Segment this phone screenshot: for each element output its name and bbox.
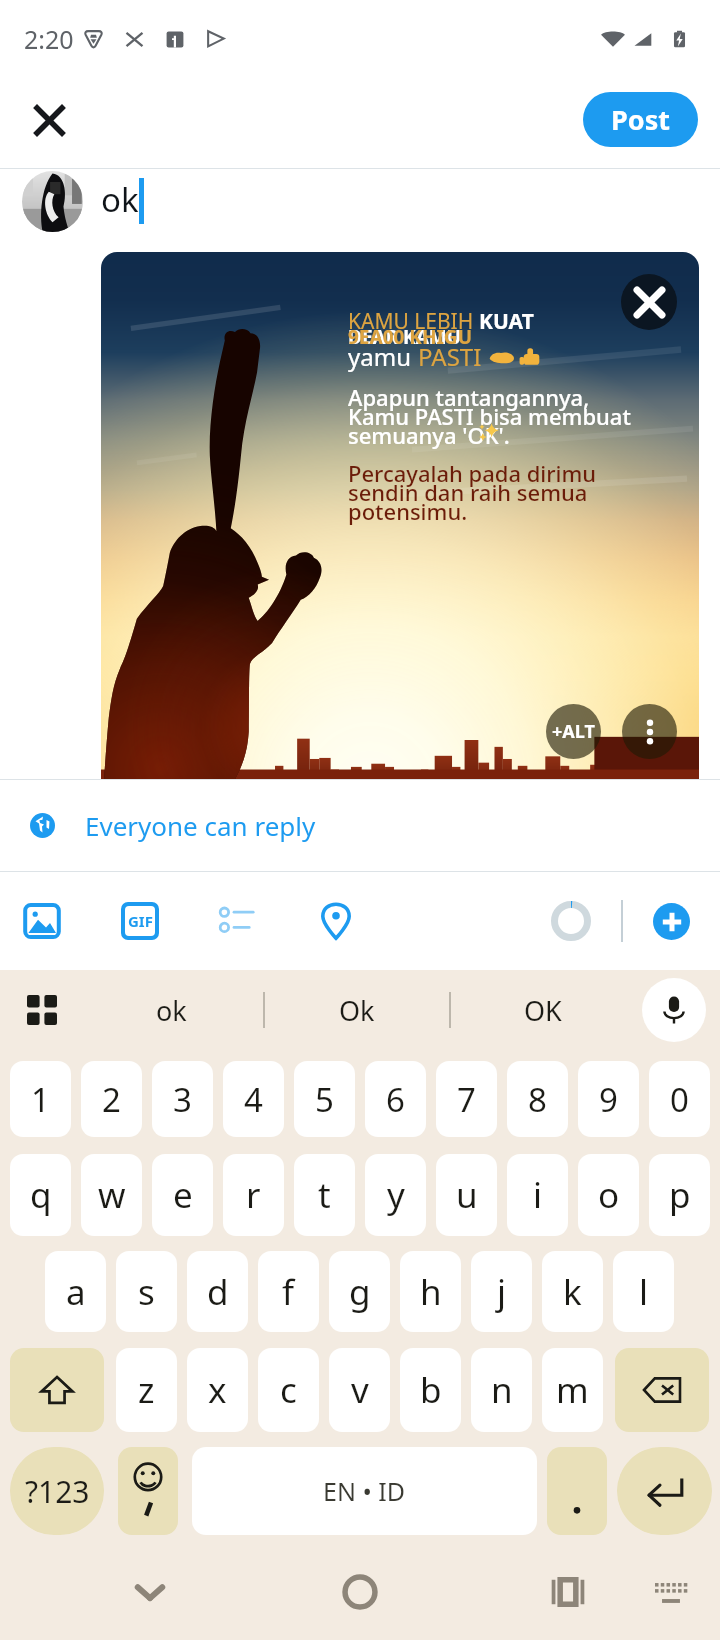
button[interactable]: 2 [81, 1061, 142, 1137]
staticText: 2 [102, 1077, 121, 1122]
button[interactable]: w [81, 1154, 142, 1236]
button[interactable]: Emoji [118, 1447, 178, 1535]
button[interactable]: y [365, 1154, 426, 1236]
button[interactable]: r [223, 1154, 284, 1236]
button[interactable]: Shift [10, 1348, 104, 1432]
button[interactable]: Backspace [615, 1348, 709, 1432]
staticText: b [420, 1366, 442, 1414]
button[interactable]: Hide keyboard [120, 1562, 180, 1622]
button[interactable]: i [507, 1154, 568, 1236]
button[interactable]: a [45, 1251, 106, 1332]
button[interactable]: 9 [578, 1061, 639, 1137]
button[interactable]: Close [14, 85, 84, 155]
button[interactable]: q [10, 1154, 71, 1236]
staticText: 1 [31, 1077, 50, 1122]
button[interactable]: ok [80, 970, 263, 1050]
button[interactable]: Voice input [642, 978, 706, 1042]
staticText: Ok [339, 992, 375, 1029]
button[interactable]: k [542, 1251, 603, 1332]
button[interactable]: f [258, 1251, 319, 1332]
button[interactable]: Keyboard menu [16, 984, 68, 1036]
staticText: 3 [173, 1077, 192, 1122]
staticText: yamu [348, 340, 418, 373]
staticText: 9EA00 KHIGU [348, 324, 472, 350]
staticText: l [639, 1268, 649, 1316]
button[interactable]: 4 [223, 1061, 284, 1137]
staticText: z [138, 1366, 155, 1414]
button[interactable]: h [400, 1251, 461, 1332]
button[interactable]: Profile picture [22, 171, 83, 232]
staticText: p [669, 1171, 691, 1219]
button[interactable]: d [187, 1251, 248, 1332]
staticText: ?123 [25, 1471, 90, 1512]
staticText: 8 [528, 1077, 547, 1122]
button[interactable]: u [436, 1154, 497, 1236]
button[interactable]: c [258, 1348, 319, 1432]
button[interactable]: Enter [617, 1447, 712, 1535]
button[interactable]: 0 [649, 1061, 710, 1137]
staticText: j [497, 1268, 507, 1316]
button[interactable]: o [578, 1154, 639, 1236]
staticText: EN • ID [323, 1474, 406, 1508]
staticText: 9 [599, 1077, 618, 1122]
button[interactable]: l [613, 1251, 674, 1332]
button[interactable]: 7 [436, 1061, 497, 1137]
button[interactable]: 3 [152, 1061, 213, 1137]
button[interactable]: j [471, 1251, 532, 1332]
button[interactable]: KAMU LEBIH [101, 252, 699, 779]
button[interactable]: Recents [538, 1562, 598, 1622]
button[interactable]: z [116, 1348, 177, 1432]
staticText: Post [611, 101, 670, 138]
button[interactable]: Add location [308, 893, 364, 949]
staticText: +ALT [552, 719, 595, 744]
staticText: h [420, 1268, 442, 1316]
button[interactable]: 6 [365, 1061, 426, 1137]
staticText: n [491, 1366, 513, 1414]
button[interactable]: EN • ID [192, 1447, 537, 1535]
button[interactable]: Add post [653, 903, 690, 940]
button[interactable]: 1 [10, 1061, 71, 1137]
button[interactable]: ?123 [10, 1447, 104, 1535]
staticText: ok [101, 177, 139, 222]
staticText: DEAR KAMU [348, 324, 462, 350]
button[interactable]: Everyone can reply [0, 780, 720, 871]
button[interactable] [547, 1447, 607, 1535]
staticText: k [563, 1268, 582, 1316]
button[interactable]: n [471, 1348, 532, 1432]
staticText: d [207, 1268, 229, 1316]
button[interactable]: 8 [507, 1061, 568, 1137]
staticText: Everyone can reply [85, 808, 316, 843]
staticText: u [456, 1171, 478, 1219]
button[interactable]: b [400, 1348, 461, 1432]
button[interactable]: Ok [265, 970, 449, 1050]
staticText: q [30, 1171, 52, 1219]
staticText: 5 [315, 1077, 334, 1122]
button[interactable]: Add poll [210, 893, 266, 949]
button[interactable]: Post [583, 92, 698, 147]
staticText: g [349, 1268, 371, 1316]
staticText: OK [524, 992, 562, 1029]
staticText: a [66, 1268, 86, 1316]
button[interactable]: t [294, 1154, 355, 1236]
button[interactable]: p [649, 1154, 710, 1236]
staticText: 0 [670, 1077, 689, 1122]
button[interactable]: s [116, 1251, 177, 1332]
staticText: x [208, 1366, 227, 1414]
button[interactable]: m [542, 1348, 603, 1432]
staticText: ok [156, 992, 187, 1029]
button[interactable]: Add GIF [112, 893, 168, 949]
button[interactable]: OK [451, 970, 635, 1050]
button[interactable]: v [329, 1348, 390, 1432]
staticText: GIF [128, 911, 153, 931]
button[interactable]: More options [622, 704, 677, 759]
button[interactable]: x [187, 1348, 248, 1432]
button[interactable]: e [152, 1154, 213, 1236]
button[interactable]: +ALT [546, 704, 601, 759]
button[interactable]: Switch keyboard [643, 1564, 699, 1620]
staticText: v [351, 1366, 369, 1414]
button[interactable]: Add photo [14, 893, 70, 949]
button[interactable]: g [329, 1251, 390, 1332]
button[interactable]: Home [330, 1562, 390, 1622]
button[interactable]: 5 [294, 1061, 355, 1137]
button[interactable]: Remove image [621, 274, 677, 330]
